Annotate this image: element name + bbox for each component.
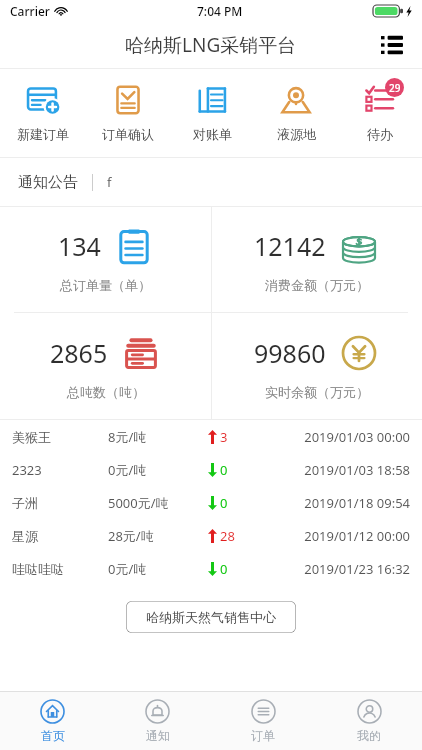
button[interactable]: 订单确认 — [85, 69, 170, 157]
button[interactable]: 99860 — [211, 313, 422, 419]
staticText: 哈纳斯天然气销售中心 — [146, 609, 276, 625]
staticText: 28元/吨 — [108, 527, 208, 545]
staticText: 通知公告 — [18, 173, 78, 192]
staticText: 3 — [220, 428, 228, 446]
staticText: 5000元/吨 — [108, 494, 208, 512]
button[interactable]: 2865 — [0, 313, 211, 419]
staticText: 哈纳斯LNG采销平台 — [125, 32, 297, 58]
staticText: 0 — [220, 494, 228, 512]
staticText: 0元/吨 — [108, 461, 208, 479]
staticText: 0元/吨 — [108, 560, 208, 578]
staticText: Carrier — [10, 3, 50, 19]
staticText: 消费金额（万元） — [265, 277, 369, 293]
staticText: 星源 — [12, 528, 108, 544]
button[interactable]: 2323 — [0, 453, 422, 486]
button[interactable]: 通知 — [105, 692, 210, 750]
button[interactable]: 订单 — [210, 692, 316, 750]
button[interactable]: 新建订单 — [0, 69, 85, 157]
button[interactable]: 通知公告 — [0, 158, 422, 206]
staticText: 99860 — [254, 336, 326, 370]
staticText: 总订单量（单） — [60, 277, 151, 293]
button[interactable]: 12142 — [211, 207, 422, 312]
staticText: 美猴王 — [12, 429, 108, 445]
staticText: 2019/01/03 18:58 — [298, 461, 410, 479]
button[interactable]: 我的 — [316, 692, 422, 750]
button[interactable]: 子洲 — [0, 486, 422, 519]
staticText: 7:04 PM — [197, 3, 243, 19]
staticText: 12142 — [254, 229, 326, 263]
staticText: 首页 — [41, 728, 65, 743]
staticText: 订单 — [251, 728, 275, 743]
staticText: 我的 — [357, 728, 381, 743]
button[interactable]: 对账单 — [170, 69, 254, 157]
staticText: 134 — [58, 229, 101, 263]
staticText: 液源地 — [277, 126, 316, 142]
staticText: 对账单 — [193, 126, 232, 142]
staticText: 待办 — [367, 126, 393, 142]
staticText: 通知 — [146, 728, 170, 743]
button[interactable]: 首页 — [0, 692, 105, 750]
staticText: 实时余额（万元） — [265, 384, 369, 400]
button[interactable]: 哇哒哇哒 — [0, 552, 422, 585]
staticText: 2019/01/12 00:00 — [298, 527, 410, 545]
button[interactable]: Menu — [374, 27, 410, 63]
staticText: f — [107, 173, 112, 191]
staticText: 28 — [220, 527, 235, 545]
staticText: 2019/01/03 00:00 — [298, 428, 410, 446]
staticText: 2323 — [12, 461, 108, 479]
staticText: 新建订单 — [17, 126, 69, 142]
staticText: 总吨数（吨） — [67, 384, 145, 400]
button[interactable]: 134 — [0, 207, 211, 312]
button[interactable]: 星源 — [0, 519, 422, 552]
staticText: 2019/01/23 16:32 — [298, 560, 410, 578]
button[interactable]: 哈纳斯天然气销售中心 — [126, 601, 296, 633]
staticText: 0 — [220, 461, 228, 479]
staticText: 订单确认 — [102, 126, 154, 142]
button[interactable]: 液源地 — [254, 69, 338, 157]
button[interactable]: 29 — [338, 69, 422, 157]
staticText: 29 — [389, 81, 401, 95]
staticText: 子洲 — [12, 495, 108, 511]
staticText: 8元/吨 — [108, 428, 208, 446]
staticText: 哇哒哇哒 — [12, 561, 108, 577]
staticText: 0 — [220, 560, 228, 578]
button[interactable]: 美猴王 — [0, 420, 422, 453]
staticText: 2019/01/18 09:54 — [298, 494, 410, 512]
staticText: 2865 — [50, 336, 108, 370]
